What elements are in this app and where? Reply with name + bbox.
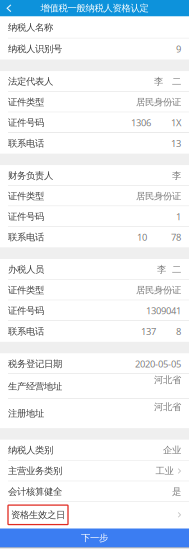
staticText: 联系电话	[8, 231, 44, 243]
staticText: 证件类型	[8, 284, 44, 296]
staticText: 李	[172, 170, 181, 181]
staticText: 是	[172, 486, 181, 497]
staticText: 证件号码	[8, 305, 44, 316]
staticText: 资格生效之日	[11, 509, 65, 521]
button[interactable]: 办税人员	[0, 259, 189, 280]
staticText: 会计核算健全	[8, 486, 62, 497]
button[interactable]: 纳税人名称	[0, 16, 189, 38]
staticText	[179, 386, 181, 399]
staticText: 居民身份证	[136, 96, 181, 108]
button[interactable]: 证件号码	[0, 206, 189, 227]
staticText: 13	[171, 137, 181, 149]
button[interactable]: 下一步	[0, 528, 189, 547]
staticText: 李 二	[154, 76, 181, 87]
staticText: 居民身份证	[136, 284, 181, 296]
button[interactable]: 证件类型	[0, 92, 189, 112]
staticText: 河北省	[154, 401, 181, 413]
button[interactable]: 纳税人类别	[0, 440, 189, 461]
staticText: 财务负责人	[8, 170, 53, 181]
button[interactable]: 会计核算健全	[0, 481, 189, 502]
staticText: 1309041	[146, 305, 181, 317]
staticText: 证件类型	[8, 190, 44, 202]
staticText: 137 8	[141, 325, 181, 338]
staticText: 法定代表人	[8, 76, 53, 87]
staticText: 9	[176, 43, 181, 55]
button[interactable]: 证件类型	[0, 280, 189, 300]
staticText: 纳税人识别号	[8, 43, 62, 55]
staticText: 河北省	[154, 374, 181, 386]
staticText: 生产经营地址	[8, 381, 62, 392]
staticText: 纳税人名称	[8, 22, 53, 33]
staticText: 联系电话	[8, 138, 44, 149]
staticText: 企业	[163, 444, 181, 456]
staticText: 居民身份证	[136, 190, 181, 202]
button[interactable]: 注册地址	[0, 399, 189, 428]
button[interactable]: 资格生效之日	[0, 502, 189, 528]
staticText: 1	[176, 210, 181, 223]
staticText: 证件类型	[8, 96, 44, 108]
staticText: 纳税人类别	[8, 444, 53, 456]
staticText: 证件号码	[8, 117, 44, 128]
button[interactable]: 法定代表人	[0, 71, 189, 92]
button[interactable]: 税务登记日期	[0, 353, 189, 374]
button[interactable]: 证件号码	[0, 112, 189, 133]
staticText: 注册地址	[8, 408, 44, 419]
staticText: 工业	[155, 465, 173, 477]
button[interactable]: 财务负责人	[0, 165, 189, 186]
staticText: 2020-05-05	[135, 358, 181, 370]
button[interactable]: 纳税人识别号	[0, 38, 189, 59]
staticText: 下一步	[81, 532, 108, 544]
staticText: 李 二	[157, 264, 181, 275]
staticText: 证件号码	[8, 211, 44, 222]
staticText: 主营业务类别	[8, 465, 62, 477]
button[interactable]: 联系电话	[0, 227, 189, 247]
button[interactable]: 证件号码	[0, 300, 189, 321]
button[interactable]: 联系电话	[0, 321, 189, 342]
button[interactable]: 主营业务类别	[0, 461, 189, 481]
button[interactable]: 联系电话	[0, 133, 189, 154]
button[interactable]: 生产经营地址	[0, 374, 189, 399]
staticText: 增值税一般纳税人资格认定	[40, 2, 148, 14]
staticText: 10 78	[137, 231, 181, 243]
button[interactable]: 证件类型	[0, 186, 189, 206]
button[interactable]: Back	[0, 0, 18, 16]
staticText: 办税人员	[8, 264, 44, 275]
staticText: 联系电话	[8, 326, 44, 337]
staticText: 税务登记日期	[8, 358, 62, 370]
staticText: 1306 1X	[131, 116, 181, 129]
